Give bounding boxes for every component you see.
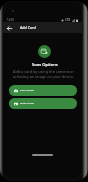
staticText: Scan Camera (20, 89, 35, 92)
staticText: Select Image (20, 102, 34, 105)
staticText: Add Card (20, 25, 36, 30)
staticText: 14:00 (7, 18, 14, 22)
button[interactable]: Select Image (9, 98, 77, 109)
button[interactable]: Back (4, 23, 14, 33)
staticText: LTE (65, 18, 71, 22)
staticText: Scan Options (32, 62, 58, 68)
button[interactable]: Scan Camera (9, 85, 77, 96)
staticText: Add a card by using the camera or select… (9, 69, 78, 79)
